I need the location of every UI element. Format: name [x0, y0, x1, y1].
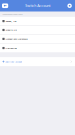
button[interactable]: Account options: [67, 0, 75, 11]
button[interactable]: Back: [0, 0, 8, 11]
staticText: Tenant, Inc: [5, 19, 16, 23]
button[interactable]: Tenant, Inc: [0, 17, 75, 26]
button[interactable]: Add New Account: [0, 57, 75, 66]
staticText: Wonderland Warehouse: [5, 37, 27, 40]
staticText: Choose an account to use: [3, 13, 23, 15]
staticText: Acquire Ltd: [5, 28, 16, 31]
staticText: Add New Account: [5, 60, 22, 63]
button[interactable]: Wonderland Warehouse: [0, 35, 75, 44]
staticText: Northwind: [5, 46, 16, 50]
button[interactable]: Northwind: [0, 44, 75, 52]
staticText: Switch Account: [25, 3, 50, 8]
button[interactable]: Acquire Ltd: [0, 26, 75, 35]
